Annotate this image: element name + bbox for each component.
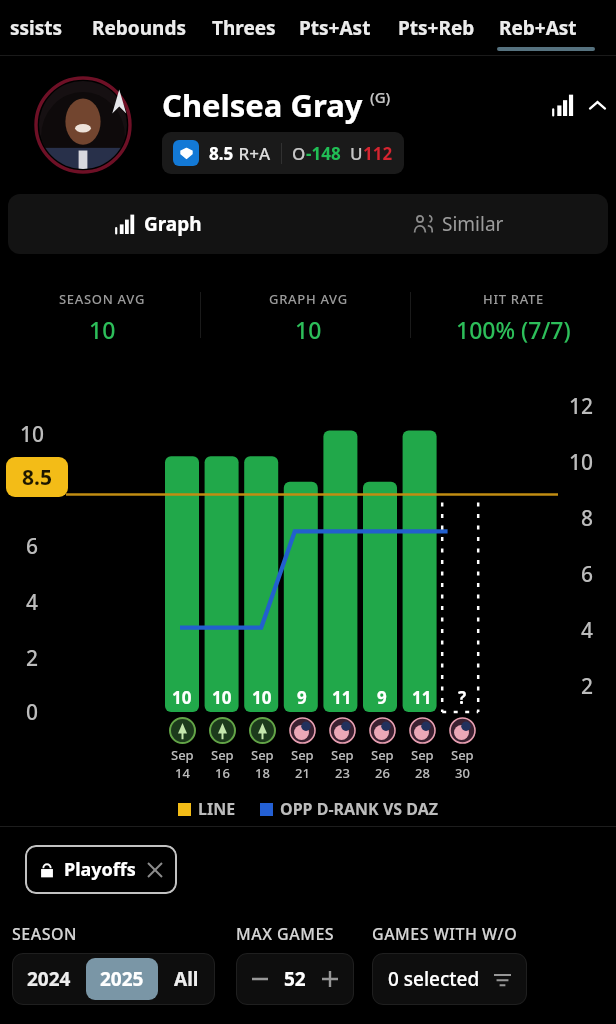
staticText: -148: [306, 142, 341, 165]
staticText: 8.5: [22, 463, 52, 492]
button[interactable]: Increase: [314, 963, 346, 995]
staticText: Playoffs: [64, 857, 136, 882]
button[interactable]: Sep: [325, 718, 359, 782]
staticText: Threes: [212, 15, 276, 41]
staticText: 0: [26, 698, 39, 727]
staticText: 23: [335, 764, 350, 782]
staticText: 2024: [27, 966, 71, 992]
staticText: 11: [332, 686, 352, 709]
staticText: MAX GAMES: [236, 923, 335, 945]
button[interactable]: Sep: [245, 718, 279, 782]
staticText: Rebounds: [92, 15, 186, 41]
staticText: 28: [415, 764, 430, 782]
staticText: ssists: [10, 15, 63, 41]
staticText: 10: [20, 420, 45, 449]
staticText: 10: [212, 686, 232, 709]
staticText: 0 selected: [388, 966, 480, 992]
staticText: 10: [569, 448, 594, 477]
staticText: Sep: [291, 746, 314, 764]
staticText: U: [350, 142, 363, 165]
staticText: ?: [458, 686, 467, 709]
button[interactable]: Reb+Ast: [497, 0, 579, 56]
staticText: 52: [284, 966, 306, 992]
staticText: GAMES WITH W/O: [372, 923, 518, 945]
staticText: 18: [255, 764, 270, 782]
staticText: 2: [581, 672, 594, 701]
staticText: All: [174, 966, 199, 992]
button[interactable]: Rebounds: [90, 0, 188, 56]
staticText: 112: [363, 142, 393, 165]
staticText: GRAPH AVG: [269, 290, 348, 308]
button[interactable]: Sep: [205, 718, 239, 782]
button[interactable]: Similar: [308, 194, 608, 254]
staticText: 16: [215, 764, 230, 782]
staticText: O: [292, 142, 306, 165]
staticText: (G): [370, 87, 391, 107]
staticText: 2: [26, 644, 39, 673]
button[interactable]: 0 selected: [372, 953, 527, 1005]
staticText: 30: [455, 764, 470, 782]
button[interactable]: Graph: [8, 194, 308, 254]
button[interactable]: 2024: [12, 953, 86, 1005]
staticText: 9: [297, 686, 307, 709]
staticText: Sep: [411, 746, 434, 764]
staticText: SEASON AVG: [59, 290, 146, 308]
button[interactable]: 8.5: [162, 132, 404, 174]
staticText: Similar: [442, 211, 504, 237]
button[interactable]: Sep: [405, 718, 439, 782]
staticText: Pts+Reb: [398, 15, 475, 41]
button[interactable]: Playoffs: [25, 845, 177, 894]
staticText: 8: [581, 504, 594, 533]
staticText: 6: [581, 560, 594, 589]
staticText: 10: [172, 686, 192, 709]
button[interactable]: Threes: [210, 0, 278, 56]
staticText: 10: [89, 314, 116, 345]
button[interactable]: 2025: [86, 958, 158, 1000]
staticText: LINE: [198, 798, 236, 820]
staticText: Sep: [251, 746, 274, 764]
staticText: 21: [295, 764, 310, 782]
staticText: Sep: [451, 746, 474, 764]
staticText: Sep: [371, 746, 394, 764]
staticText: SEASON: [12, 923, 77, 945]
button[interactable]: Chart view: [546, 88, 580, 122]
staticText: Chelsea Gray: [162, 84, 363, 126]
staticText: Reb+Ast: [499, 15, 577, 41]
button[interactable]: Collapse: [582, 90, 612, 120]
button[interactable]: Pts+Reb: [396, 0, 477, 56]
staticText: 26: [375, 764, 390, 782]
staticText: Sep: [171, 746, 194, 764]
button[interactable]: Decrease: [244, 963, 276, 995]
staticText: 8.5: [209, 142, 234, 165]
staticText: 12: [569, 392, 594, 421]
staticText: 4: [26, 588, 39, 617]
staticText: 11: [412, 686, 432, 709]
staticText: Graph: [144, 211, 202, 237]
staticText: 10: [252, 686, 272, 709]
staticText: 14: [175, 764, 190, 782]
staticText: HIT RATE: [483, 290, 544, 308]
staticText: 6: [26, 532, 39, 561]
staticText: Sep: [211, 746, 234, 764]
staticText: 2025: [100, 966, 144, 992]
button[interactable]: Pts+Ast: [297, 0, 373, 56]
staticText: 10: [295, 314, 322, 345]
staticText: 4: [581, 616, 594, 645]
staticText: OPP D-RANK VS DAZ: [280, 798, 438, 820]
button[interactable]: ssists: [8, 0, 65, 56]
button[interactable]: Sep: [365, 718, 399, 782]
staticText: Sep: [331, 746, 354, 764]
staticText: Pts+Ast: [299, 15, 371, 41]
button[interactable]: Sep: [285, 718, 319, 782]
staticText: R+A: [234, 142, 271, 165]
staticText: 100% (7/7): [456, 314, 571, 345]
button[interactable]: Sep: [445, 718, 479, 782]
button[interactable]: All: [158, 953, 215, 1005]
button[interactable]: Sep: [165, 718, 199, 782]
staticText: 9: [377, 686, 387, 709]
